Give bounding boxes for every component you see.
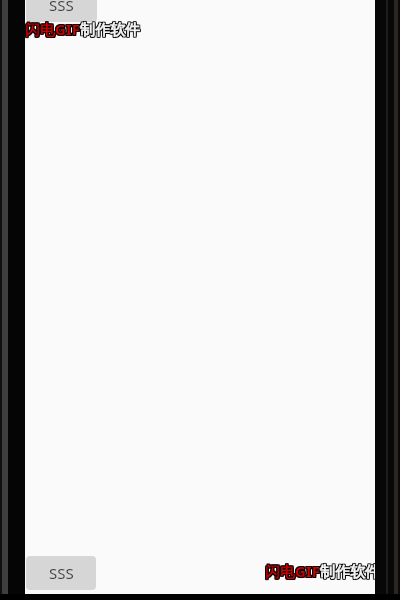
staticText: 闪电GIF制作软件 <box>264 560 379 580</box>
staticText: 闪电GIF制作软件 <box>26 20 141 40</box>
staticText: 闪电GIF制作软件 <box>24 19 139 39</box>
staticText: 闪电GIF制作软件 <box>265 562 380 582</box>
staticText: 闪电GIF制作软件 <box>25 20 140 40</box>
staticText: 闪电GIF制作软件 <box>26 19 141 39</box>
staticText: SSS <box>49 0 74 15</box>
button[interactable]: SSS <box>26 0 97 22</box>
staticText: 闪电GIF制作软件 <box>25 18 140 38</box>
staticText: 闪电GIF制作软件 <box>265 560 380 580</box>
staticText: 闪电GIF制作软件 <box>24 20 139 40</box>
staticText: SSS <box>49 563 74 583</box>
staticText: 闪电GIF制作软件 <box>266 560 381 580</box>
staticText: 闪电GIF制作软件 <box>25 19 140 39</box>
button[interactable]: SSS <box>26 556 96 590</box>
staticText: 闪电GIF制作软件 <box>26 18 141 38</box>
staticText: 闪电GIF制作软件 <box>265 561 380 581</box>
staticText: 闪电GIF制作软件 <box>24 18 139 38</box>
staticText: 闪电GIF制作软件 <box>264 561 379 581</box>
staticText: 闪电GIF制作软件 <box>266 562 381 582</box>
staticText: 闪电GIF制作软件 <box>264 562 379 582</box>
staticText: 闪电GIF制作软件 <box>266 561 381 581</box>
